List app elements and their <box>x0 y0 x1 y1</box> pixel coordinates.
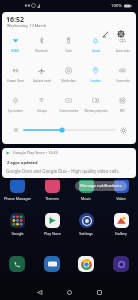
button[interactable]: Google Play Store • 13:49 <box>2 148 136 178</box>
staticText: Google <box>11 231 24 236</box>
staticText: Google Docs and Google Duo – High qualit… <box>6 168 119 174</box>
button[interactable]: Auto-rotate <box>109 34 136 53</box>
button[interactable]: Manage notifications <box>75 181 127 191</box>
button[interactable]: Phone <box>9 256 25 272</box>
staticText: Gallery <box>115 231 127 236</box>
button[interactable]: Play Store <box>38 213 66 236</box>
staticText: Video <box>116 196 126 201</box>
button[interactable]: Wireless projection <box>82 94 109 113</box>
staticText: Screen recorder <box>59 109 79 113</box>
staticText: Mobile data <box>61 79 76 83</box>
staticText: Play Store <box>44 231 61 236</box>
staticText: Airplane mode <box>33 79 51 83</box>
button[interactable]: Location <box>82 64 109 83</box>
staticText: Google Play Store • 13:49 <box>13 150 58 155</box>
button[interactable]: Airplane mode <box>28 64 55 83</box>
button[interactable]: Messages <box>44 256 60 272</box>
staticText: Location <box>90 79 101 83</box>
staticText: Huawei Share <box>7 79 24 83</box>
button[interactable]: Phone Manager <box>3 178 31 201</box>
button[interactable]: Settings <box>72 213 100 236</box>
staticText: NFC <box>120 109 125 113</box>
button[interactable]: Huawei Share <box>2 64 28 83</box>
button[interactable]: Music <box>72 178 100 201</box>
staticText: Manage notifications <box>80 183 122 189</box>
staticText: WLAN <box>11 49 19 53</box>
staticText: Auto-rotate <box>116 49 130 53</box>
button[interactable]: Chrome <box>78 256 94 272</box>
staticText: Settings <box>79 231 93 236</box>
staticText: Wednesday, 13 March <box>7 23 47 28</box>
staticText: Screenshot <box>116 79 130 83</box>
button[interactable]: Google <box>3 213 31 236</box>
button[interactable]: Bluetooth <box>28 34 55 53</box>
staticText: Bluetooth <box>35 49 48 53</box>
staticText: 100% <box>111 3 122 9</box>
staticText: Themes <box>45 196 59 201</box>
button[interactable]: Video <box>107 178 135 201</box>
staticText: 16:52 <box>6 15 24 25</box>
button[interactable]: Gallery <box>107 213 135 236</box>
staticText: Wireless projection <box>84 109 108 113</box>
staticText: Music <box>81 196 91 201</box>
button[interactable]: Recents <box>91 284 107 300</box>
button[interactable]: WLAN <box>2 34 28 53</box>
button[interactable]: Brightness <box>23 125 116 135</box>
staticText: Hotspot <box>37 109 47 113</box>
button[interactable]: Torch <box>55 34 82 53</box>
button[interactable]: Screenshot <box>109 64 136 83</box>
staticText: Torch <box>65 49 72 53</box>
button[interactable]: Themes <box>38 178 66 201</box>
button[interactable]: Hotspot <box>28 94 55 113</box>
staticText: 2 apps updated <box>7 160 38 165</box>
button[interactable]: Sound <box>82 34 109 53</box>
staticText: Phone Manager <box>4 196 31 201</box>
button[interactable]: Settings <box>115 28 127 40</box>
button[interactable]: Mobile data <box>55 64 82 83</box>
staticText: Sound <box>92 49 100 53</box>
button[interactable]: Back <box>31 284 47 300</box>
button[interactable]: Eye comfort <box>2 94 28 113</box>
button[interactable]: Home <box>61 284 77 300</box>
button[interactable]: Camera <box>113 256 129 272</box>
button[interactable]: Screen recorder <box>55 94 82 113</box>
button[interactable]: NFC <box>109 94 136 113</box>
button[interactable]: Edit tiles <box>99 28 111 40</box>
staticText: Eye comfort <box>8 109 23 113</box>
